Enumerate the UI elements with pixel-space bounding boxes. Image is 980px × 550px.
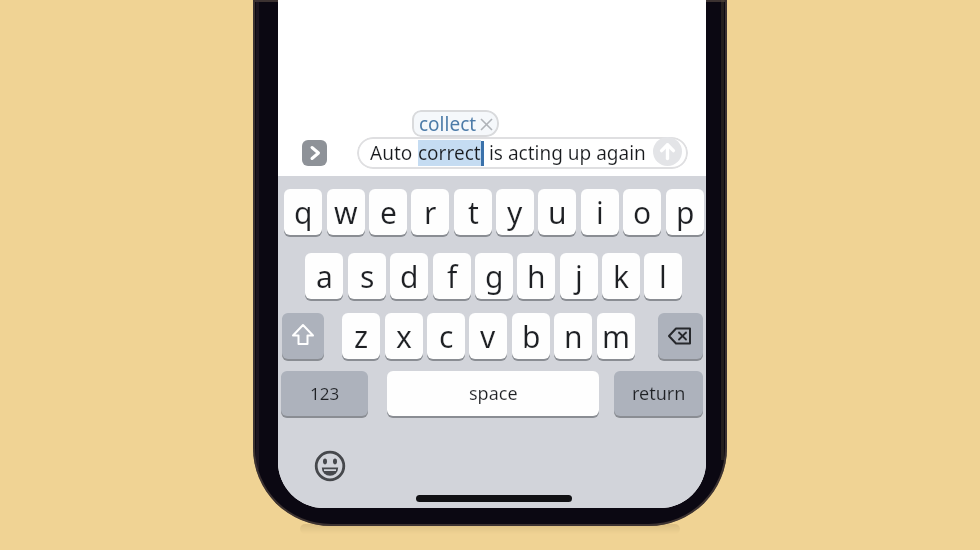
staticText: s xyxy=(360,256,375,297)
button[interactable]: m xyxy=(597,313,635,359)
button[interactable]: n xyxy=(554,313,592,359)
button[interactable]: t xyxy=(454,189,492,235)
staticText: correct xyxy=(418,140,481,166)
staticText: e xyxy=(380,192,397,233)
button[interactable]: d xyxy=(390,253,428,299)
button[interactable]: p xyxy=(666,189,704,235)
staticText: collect xyxy=(419,111,477,137)
button[interactable]: u xyxy=(538,189,576,235)
button[interactable]: i xyxy=(581,189,619,235)
staticText: r xyxy=(424,192,437,233)
button[interactable]: x xyxy=(385,313,423,359)
staticText: Auto xyxy=(370,140,418,166)
button[interactable]: r xyxy=(411,189,449,235)
staticText: y xyxy=(507,192,523,233)
button[interactable]: space xyxy=(387,371,599,416)
staticText: o xyxy=(633,192,652,233)
button[interactable] xyxy=(653,137,682,166)
staticText: h xyxy=(527,256,546,297)
staticText: return xyxy=(632,381,686,406)
staticText: t xyxy=(468,192,479,233)
button[interactable]: l xyxy=(644,253,682,299)
button[interactable] xyxy=(302,140,327,166)
staticText: m xyxy=(602,316,631,357)
button[interactable]: k xyxy=(602,253,640,299)
staticText: is acting up again xyxy=(484,140,646,166)
button[interactable]: return xyxy=(614,371,703,416)
button[interactable]: o xyxy=(623,189,661,235)
button[interactable]: a xyxy=(305,253,343,299)
button[interactable]: 123 xyxy=(281,371,368,416)
button[interactable]: c xyxy=(427,313,465,359)
staticText: i xyxy=(596,192,604,233)
staticText: l xyxy=(659,256,667,297)
button[interactable]: j xyxy=(560,253,598,299)
button[interactable] xyxy=(315,451,345,481)
button[interactable]: f xyxy=(433,253,471,299)
staticText: c xyxy=(439,316,454,357)
button[interactable] xyxy=(658,313,703,359)
button[interactable]: g xyxy=(475,253,513,299)
button[interactable]: q xyxy=(284,189,322,235)
staticText: x xyxy=(396,316,412,357)
button[interactable]: z xyxy=(342,313,380,359)
staticText: n xyxy=(564,316,583,357)
staticText: k xyxy=(613,256,630,297)
button[interactable]: v xyxy=(469,313,507,359)
button[interactable]: b xyxy=(512,313,550,359)
button[interactable]: s xyxy=(348,253,386,299)
staticText: f xyxy=(447,256,458,297)
staticText: space xyxy=(469,381,518,406)
staticText: a xyxy=(316,256,333,297)
button[interactable] xyxy=(357,137,688,169)
staticText: b xyxy=(522,316,541,357)
staticText: p xyxy=(676,192,695,233)
staticText: z xyxy=(354,316,369,357)
button[interactable]: collect xyxy=(412,110,499,137)
button[interactable]: e xyxy=(369,189,407,235)
staticText: q xyxy=(294,192,313,233)
staticText: g xyxy=(485,256,504,297)
staticText: w xyxy=(334,192,358,233)
button[interactable] xyxy=(282,313,324,359)
staticText: j xyxy=(575,256,583,297)
staticText: 123 xyxy=(310,382,340,405)
button[interactable]: y xyxy=(496,189,534,235)
button[interactable]: h xyxy=(517,253,555,299)
staticText: u xyxy=(548,192,567,233)
staticText: v xyxy=(480,316,496,357)
button[interactable]: w xyxy=(327,189,365,235)
staticText: d xyxy=(400,256,419,297)
